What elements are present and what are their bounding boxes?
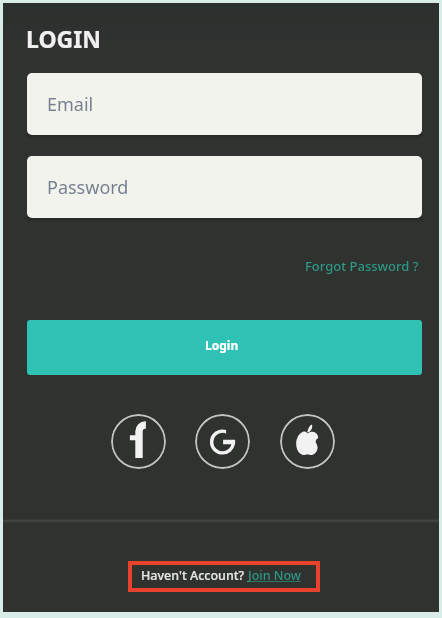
staticText: Join Now	[248, 567, 301, 584]
staticText: Forgot Password ?	[305, 257, 419, 275]
button[interactable]: Forgot Password ?	[299, 251, 425, 281]
staticText: Haven't Account?	[141, 567, 248, 584]
staticText: Email	[47, 92, 94, 117]
button[interactable]: Email	[27, 73, 422, 135]
staticText: Password	[47, 175, 129, 200]
button[interactable]: Sign in with Facebook	[111, 414, 166, 469]
staticText: Login	[205, 337, 239, 353]
button[interactable]: Sign in with Google	[195, 414, 250, 469]
button[interactable]: Password	[27, 156, 422, 218]
button[interactable]: Haven't Account?	[128, 561, 320, 592]
button[interactable]: Login	[27, 320, 422, 375]
button[interactable]: Sign in with Apple	[280, 414, 335, 469]
staticText: LOGIN	[26, 23, 101, 54]
